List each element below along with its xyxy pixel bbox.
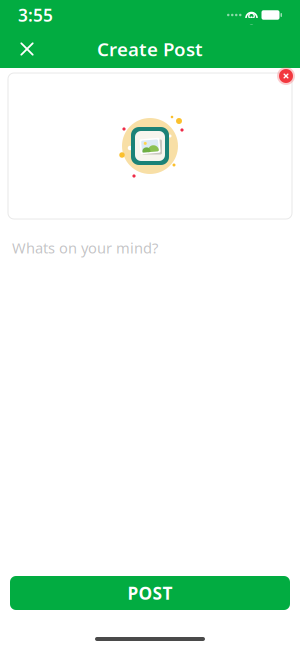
staticText: 3:55	[18, 3, 53, 26]
staticText: POST	[127, 581, 172, 604]
staticText: Whats on your mind?	[12, 238, 158, 257]
button[interactable]: POST	[10, 576, 290, 610]
button[interactable]: Remove image	[275, 65, 297, 87]
staticText: Create Post	[97, 37, 203, 61]
button[interactable]: Close	[8, 30, 46, 68]
